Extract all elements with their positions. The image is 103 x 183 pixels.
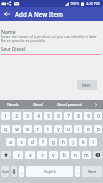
button[interactable]: q [1, 125, 10, 133]
button[interactable]: z [13, 151, 23, 159]
staticText: a [9, 139, 12, 145]
staticText: Be as specific as possible. [1, 38, 46, 43]
staticText: , [21, 169, 23, 175]
staticText: s [20, 139, 23, 145]
staticText: u [67, 126, 70, 132]
staticText: Enter the name of a product so you can i… [1, 34, 97, 39]
staticText: 1 [4, 113, 7, 119]
staticText: Diesel-powered [57, 102, 82, 107]
button[interactable]: 8 [74, 112, 82, 120]
staticText: b [63, 152, 66, 158]
button[interactable]: 6 [54, 112, 62, 120]
staticText: 2 [15, 113, 18, 119]
button[interactable]: Delete [93, 151, 102, 159]
staticText: NEXT [82, 83, 92, 88]
button[interactable]: b [60, 151, 69, 159]
staticText: k [82, 139, 85, 145]
button[interactable]: Diesels [0, 100, 26, 109]
button[interactable]: j [69, 138, 77, 146]
staticText: Name [1, 28, 16, 35]
button[interactable]: d [28, 138, 37, 146]
button[interactable]: o [84, 125, 92, 133]
button[interactable]: l [89, 138, 97, 146]
button[interactable]: 3 [23, 112, 32, 120]
staticText: d [31, 139, 34, 145]
button[interactable]: x [25, 151, 35, 159]
button[interactable]: Shift [1, 151, 11, 159]
staticText: l [92, 139, 94, 145]
button[interactable]: 5 [44, 112, 52, 120]
staticText: q [4, 126, 7, 132]
button[interactable]: 2 [12, 112, 21, 120]
staticText: English [44, 169, 56, 174]
button[interactable]: t [44, 125, 52, 133]
staticText: p [97, 126, 100, 132]
staticText: h [62, 139, 65, 145]
button[interactable]: Diesel-powered [49, 100, 89, 109]
button[interactable]: i [74, 125, 82, 133]
button[interactable]: u [64, 125, 72, 133]
button[interactable]: , [19, 166, 24, 177]
button[interactable]: English [26, 166, 73, 177]
button[interactable]: m [82, 151, 91, 159]
staticText: 4 [37, 113, 40, 119]
staticText: r [37, 126, 39, 132]
staticText: j [72, 139, 74, 145]
button[interactable]: Sym [1, 166, 9, 177]
staticText: f [42, 139, 44, 145]
staticText: y [57, 126, 60, 132]
staticText: 0 [97, 113, 100, 119]
staticText: i [77, 126, 79, 132]
staticText: Diesel [33, 102, 43, 107]
staticText: m [84, 152, 89, 158]
button[interactable]: 9 [84, 112, 92, 120]
staticText: Diesels [7, 102, 19, 107]
staticText: Sym [2, 169, 9, 174]
button[interactable]: a [6, 138, 15, 146]
staticText: Sour Diesel [1, 46, 25, 52]
button[interactable]: Navigate up [0, 7, 13, 20]
button[interactable]: 1 [1, 112, 10, 120]
staticText: . [77, 169, 79, 175]
staticText: 100% [70, 1, 80, 6]
staticText: n [74, 152, 77, 158]
button[interactable]: s [17, 138, 26, 146]
staticText: v [52, 152, 55, 158]
staticText: 5 [47, 113, 50, 119]
button[interactable]: NEXT [77, 80, 97, 90]
button[interactable]: 7 [64, 112, 72, 120]
staticText: x [29, 152, 32, 158]
button[interactable]: 0 [94, 112, 102, 120]
staticText: 3 [26, 113, 29, 119]
staticText: g [52, 139, 55, 145]
button[interactable]: c [37, 151, 47, 159]
button[interactable]: h [59, 138, 67, 146]
button[interactable]: n [71, 151, 80, 159]
button[interactable]: . [75, 166, 80, 177]
staticText: t [47, 126, 49, 132]
button[interactable]: Voice input [11, 166, 17, 177]
staticText: z [17, 152, 20, 158]
staticText: 7 [67, 113, 70, 119]
button[interactable]: f [39, 138, 47, 146]
button[interactable]: 4 [34, 112, 42, 120]
staticText: 6 [57, 113, 60, 119]
button[interactable]: v [49, 151, 58, 159]
button[interactable]: y [54, 125, 62, 133]
button[interactable]: Next [82, 166, 102, 177]
button[interactable]: Diesel [26, 100, 49, 109]
staticText: o [87, 126, 90, 132]
staticText: 8 [77, 113, 80, 119]
staticText: 9 [87, 113, 90, 119]
staticText: e [26, 126, 29, 132]
button[interactable]: More suggestions [89, 100, 103, 109]
button[interactable]: w [12, 125, 21, 133]
button[interactable]: p [94, 125, 102, 133]
button[interactable]: e [23, 125, 32, 133]
button[interactable]: r [34, 125, 42, 133]
staticText: Next [88, 169, 96, 174]
staticText: w [15, 126, 19, 132]
button[interactable]: g [49, 138, 57, 146]
staticText: c [41, 152, 44, 158]
button[interactable]: k [79, 138, 87, 146]
